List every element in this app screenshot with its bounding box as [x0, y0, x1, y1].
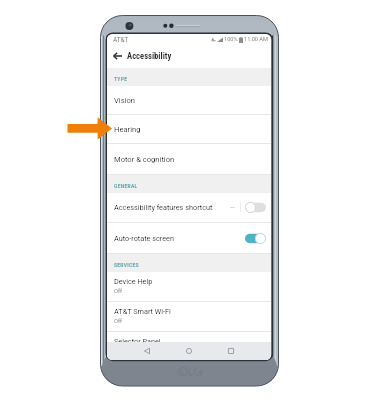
- staticText: Off: [114, 288, 123, 295]
- button[interactable]: Home: [176, 342, 202, 360]
- button[interactable]: Switch off: [245, 202, 266, 213]
- staticText: 100%: [224, 36, 238, 43]
- button[interactable]: Switch on: [245, 233, 266, 244]
- staticText: Vision: [114, 96, 135, 105]
- staticText: Off: [114, 318, 123, 325]
- staticText: Motor & cognition: [114, 155, 175, 164]
- staticText: Device Help: [114, 277, 153, 286]
- button[interactable]: Vision: [107, 86, 271, 114]
- button[interactable]: Back: [134, 342, 160, 360]
- button[interactable]: Selector Panel: [107, 332, 271, 360]
- staticText: Auto-rotate screen: [114, 234, 245, 243]
- button[interactable]: Navigate up: [110, 46, 124, 66]
- staticText: Selector Panel: [114, 337, 161, 346]
- button[interactable]: Device Help: [107, 272, 271, 301]
- staticText: AT&T Smart Wi-Fi: [114, 307, 171, 316]
- button[interactable]: Hearing: [107, 115, 271, 143]
- button[interactable]: Motor & cognition: [107, 144, 271, 174]
- staticText: Accessibility: [127, 51, 172, 61]
- staticText: TYPE: [114, 76, 128, 82]
- button[interactable]: Recent apps: [218, 342, 244, 360]
- staticText: Hearing: [114, 125, 141, 134]
- staticText: SERVICES: [114, 262, 139, 268]
- button[interactable]: AT&T Smart Wi-Fi: [107, 302, 271, 331]
- staticText: GENERAL: [114, 183, 138, 189]
- staticText: Accessibility features shortcut: [114, 203, 230, 212]
- staticText: AT&T: [113, 36, 129, 44]
- button[interactable]: Accessibility features shortcut: [107, 193, 271, 222]
- button[interactable]: Auto-rotate screen: [107, 223, 271, 253]
- staticText: 11:00 AM: [244, 36, 268, 43]
